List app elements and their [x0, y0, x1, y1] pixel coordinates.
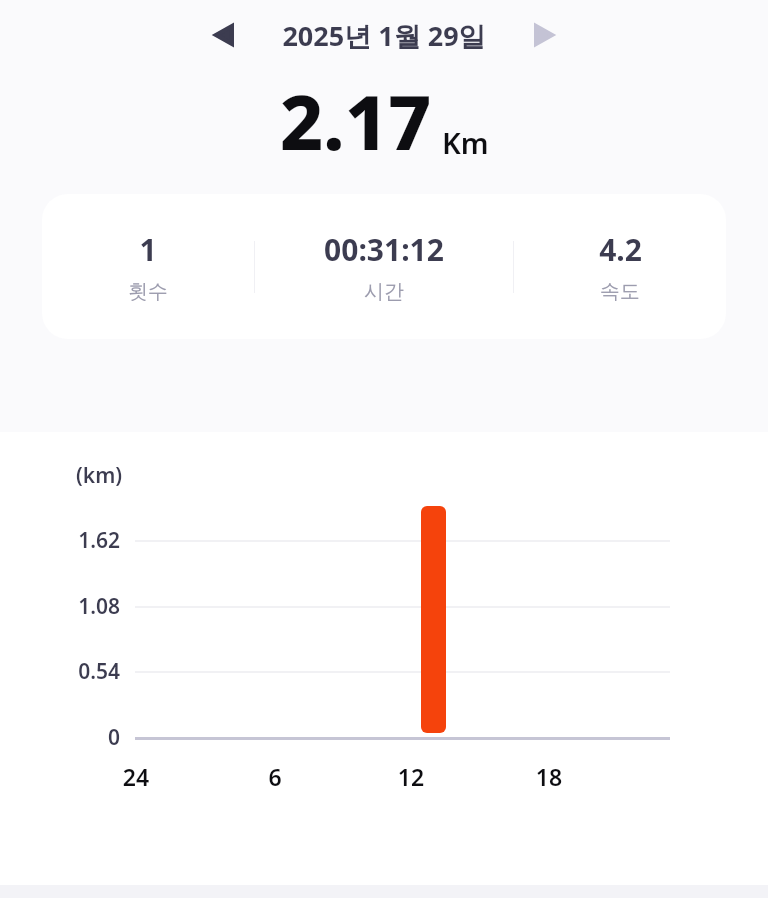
staticText: 1.08	[0, 592, 120, 621]
staticText: Km	[442, 123, 489, 162]
staticText: 속도	[600, 279, 640, 304]
staticText: 0.54	[0, 657, 120, 686]
staticText: 12	[381, 761, 441, 792]
staticText: 0	[0, 723, 120, 752]
button[interactable]: Previous day	[198, 9, 250, 61]
button[interactable]: 00:31:12	[255, 229, 513, 304]
staticText: 6	[245, 761, 305, 792]
staticText: 24	[106, 761, 166, 792]
staticText: 1	[139, 229, 157, 270]
staticText: 2.17	[280, 70, 432, 172]
staticText: 2025년 1월 29일	[282, 17, 486, 54]
button[interactable]: 1	[42, 229, 254, 304]
staticText: 18	[519, 761, 579, 792]
staticText: 시간	[364, 279, 404, 304]
staticText: 횟수	[128, 279, 168, 304]
staticText: (km)	[76, 461, 123, 490]
staticText: 4.2	[599, 229, 642, 270]
button[interactable]: Next day	[518, 9, 570, 61]
staticText: 00:31:12	[324, 229, 444, 270]
button[interactable]: 4.2	[514, 229, 726, 304]
staticText: 1.62	[0, 526, 120, 555]
